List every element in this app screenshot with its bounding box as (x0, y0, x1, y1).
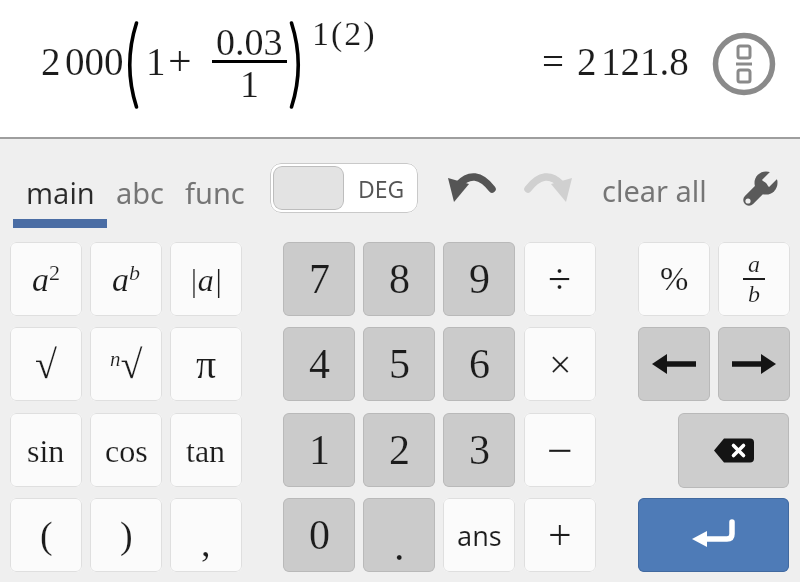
staticText: × (549, 342, 572, 386)
staticText: 1 (146, 40, 166, 83)
staticText: π (196, 342, 217, 386)
staticText: ans (457, 517, 502, 554)
staticText: 4 (309, 341, 330, 388)
staticText: 2 (577, 40, 597, 83)
button[interactable] (718, 327, 790, 401)
button[interactable]: ab (90, 242, 162, 316)
staticText: . (394, 523, 405, 570)
button[interactable]: % (638, 242, 710, 316)
staticText: 2 (41, 40, 61, 83)
button[interactable]: abc (110, 164, 170, 220)
button[interactable] (638, 327, 710, 401)
button[interactable]: ÷ (524, 242, 596, 316)
staticText: 3 (469, 427, 490, 474)
staticText: % (660, 260, 689, 298)
staticText: √ (35, 342, 57, 386)
button[interactable]: , (170, 498, 242, 572)
button[interactable]: π (170, 327, 242, 401)
button[interactable]: 2 (363, 413, 435, 487)
staticText: 1(2) (312, 15, 377, 53)
button[interactable] (678, 413, 789, 488)
button[interactable]: a (718, 242, 790, 316)
button[interactable]: √ (10, 327, 82, 401)
staticText: + (168, 38, 192, 85)
button[interactable]: func (180, 164, 250, 220)
staticText: cos (105, 433, 148, 468)
staticText: = (542, 40, 564, 83)
staticText: ( (40, 514, 53, 556)
button[interactable]: 5 (363, 327, 435, 401)
button[interactable]: sin (10, 413, 82, 487)
staticText: , (201, 522, 211, 564)
staticText: 2 (389, 427, 410, 474)
staticText: 000 (65, 40, 124, 83)
button[interactable]: 9 (443, 242, 515, 316)
staticText: main (26, 173, 95, 212)
staticText: clear all (602, 171, 707, 210)
button[interactable] (527, 174, 573, 204)
staticText: sin (27, 433, 65, 468)
button[interactable]: cos (90, 413, 162, 487)
staticText: − (547, 425, 573, 476)
staticText: 8 (389, 256, 410, 303)
button[interactable]: tan (170, 413, 242, 487)
staticText: a (748, 251, 760, 277)
button[interactable]: |a| (170, 242, 242, 316)
button[interactable]: ans (443, 498, 515, 572)
button[interactable]: 8 (363, 242, 435, 316)
staticText: 121.8 (601, 40, 689, 83)
staticText: 6 (469, 341, 490, 388)
button[interactable]: × (524, 327, 596, 401)
button[interactable]: 7 (283, 242, 355, 316)
button[interactable]: 0 (283, 498, 355, 572)
button[interactable] (638, 498, 789, 572)
button[interactable] (741, 170, 781, 210)
staticText: 1 (309, 427, 330, 474)
button[interactable]: 6 (443, 327, 515, 401)
button[interactable]: 3 (443, 413, 515, 487)
button[interactable]: clear all (596, 164, 712, 216)
staticText: 0.03 (216, 21, 283, 63)
staticText: tan (186, 433, 226, 468)
button[interactable] (449, 174, 495, 204)
staticText: DEG (358, 173, 405, 204)
staticText: |a| (189, 262, 223, 297)
button[interactable]: 4 (283, 327, 355, 401)
staticText: 9 (469, 256, 490, 303)
staticText: + (548, 512, 572, 559)
staticText: a2 (32, 260, 60, 298)
staticText: abc (116, 173, 165, 212)
staticText: 1 (240, 63, 259, 105)
button[interactable]: main (13, 164, 107, 220)
staticText: 7 (309, 256, 330, 303)
staticText: ) (120, 514, 133, 556)
staticText: ab (112, 260, 140, 298)
button[interactable]: − (524, 413, 596, 487)
button[interactable]: ( (10, 498, 82, 572)
button[interactable]: . (363, 498, 435, 572)
button[interactable]: DEG (270, 163, 418, 213)
staticText: 0 (309, 512, 330, 559)
staticText: b (748, 281, 760, 307)
staticText: 5 (389, 341, 410, 388)
button[interactable] (712, 32, 776, 96)
staticText: ÷ (548, 256, 572, 303)
staticText: func (185, 173, 245, 212)
button[interactable]: ) (90, 498, 162, 572)
button[interactable]: a2 (10, 242, 82, 316)
button[interactable]: + (524, 498, 596, 572)
button[interactable]: n√ (90, 327, 162, 401)
staticText: n√ (110, 342, 143, 386)
button[interactable]: 1 (283, 413, 355, 487)
